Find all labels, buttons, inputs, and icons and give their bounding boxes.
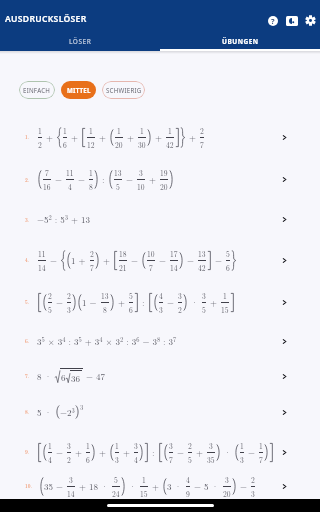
button[interactable]: 4. [0, 239, 320, 281]
button[interactable]: 3. [0, 200, 320, 239]
staticText: : [99, 173, 108, 186]
staticText: − 47 [83, 370, 105, 383]
button[interactable]: 1. [0, 115, 320, 159]
staticText: 6 [129, 304, 133, 315]
staticText: 42 [166, 139, 174, 150]
staticText: 1 [168, 125, 172, 136]
button[interactable]: 7. [0, 359, 320, 393]
staticText: 36 [71, 372, 81, 385]
button[interactable]: 2. [0, 159, 320, 200]
staticText: 3 [240, 454, 244, 465]
staticText: SCHWIERIG [106, 86, 142, 94]
button[interactable]: Contrast [282, 11, 301, 30]
staticText: 7. [25, 372, 30, 380]
staticText: 16 [43, 181, 51, 192]
staticText: 35 × 34 : 35 + 34 × 32 : 36 − 38 : 37 [37, 335, 177, 348]
button[interactable]: 8. [0, 393, 320, 431]
button[interactable]: ÜBUNGEN [160, 31, 320, 51]
staticText: 3 [209, 440, 213, 451]
button[interactable]: LÖSER [0, 31, 160, 51]
button[interactable]: Settings [301, 11, 320, 30]
staticText: + [68, 131, 81, 144]
staticText: 2 [188, 440, 192, 451]
staticText: − [75, 173, 88, 186]
button[interactable]: 6. [0, 323, 320, 359]
staticText: 1 [63, 125, 67, 136]
button[interactable]: 10. [0, 473, 320, 499]
staticText: + [124, 131, 137, 144]
staticText: 1 [38, 125, 42, 136]
staticText: 7 [149, 262, 153, 273]
staticText: 4 [186, 474, 190, 485]
staticText: 2 [67, 454, 71, 465]
staticText: 5 [226, 248, 230, 259]
staticText: 3 · [167, 480, 185, 493]
staticText: + [120, 446, 133, 459]
button[interactable]: 9. [0, 431, 320, 473]
staticText: 6 [226, 262, 230, 273]
button[interactable]: SCHWIERIG [102, 81, 145, 99]
staticText: 1 [142, 474, 146, 485]
staticText: + [96, 446, 109, 459]
button[interactable]: MITTEL [61, 81, 96, 99]
staticText: 2 [90, 248, 94, 259]
staticText: − [212, 254, 225, 267]
staticText: + [149, 480, 162, 493]
staticText: 5. [25, 298, 30, 306]
staticText: 2 [178, 304, 182, 315]
staticText: 20 [160, 181, 168, 192]
staticText: − [52, 173, 65, 186]
staticText: EINFACH [23, 86, 51, 94]
staticText: 7 [169, 454, 173, 465]
staticText: 3 [80, 403, 84, 412]
staticText: + 18 · [76, 480, 111, 493]
staticText: − [123, 173, 136, 186]
staticText: 4 [68, 181, 72, 192]
staticText: 14 [67, 488, 75, 499]
staticText: 1 − [82, 296, 100, 309]
button[interactable]: 5. [0, 281, 320, 323]
staticText: 1 [86, 440, 90, 451]
staticText: 15 [221, 304, 229, 315]
staticText: 1 [240, 440, 244, 451]
staticText: 15 [140, 488, 148, 499]
staticText: 1. [25, 133, 30, 141]
staticText: 12 [87, 139, 95, 150]
staticText: · [126, 480, 139, 493]
staticText: 1 [89, 125, 93, 136]
staticText: 8 · [37, 370, 55, 383]
staticText: 5 [114, 474, 118, 485]
staticText: 3 [202, 290, 206, 301]
staticText: 2 [251, 474, 255, 485]
staticText: 8. [25, 408, 30, 416]
staticText: 9. [25, 448, 30, 456]
staticText: 3 [169, 440, 173, 451]
button[interactable]: EINFACH [19, 81, 55, 99]
button[interactable]: Help [263, 11, 282, 30]
staticText: −52 : 53 + 13 [37, 213, 90, 226]
staticText: 35 [207, 454, 215, 465]
staticText: 5 [202, 304, 206, 315]
staticText: 7 [200, 139, 204, 150]
staticText: 2 [200, 125, 204, 136]
staticText: + [146, 173, 159, 186]
staticText: 1 [223, 290, 227, 301]
staticText: 9 [186, 488, 190, 499]
staticText: 1 [48, 440, 52, 451]
staticText: 2. [25, 176, 30, 184]
staticText: 24 [112, 488, 120, 499]
staticText: : [149, 446, 158, 459]
staticText: 21 [119, 262, 127, 273]
staticText: 3 [69, 474, 73, 485]
staticText: − [164, 296, 177, 309]
staticText: 11 [38, 248, 46, 259]
staticText: 3. [25, 216, 30, 224]
staticText: 7 [259, 454, 263, 465]
staticText: 5 [188, 454, 192, 465]
staticText: 6 [61, 371, 66, 384]
staticText: 1 [117, 125, 121, 136]
staticText: LÖSER [69, 37, 92, 46]
staticText: − [174, 446, 187, 459]
staticText: − [184, 254, 197, 267]
staticText: 10 [137, 181, 145, 192]
